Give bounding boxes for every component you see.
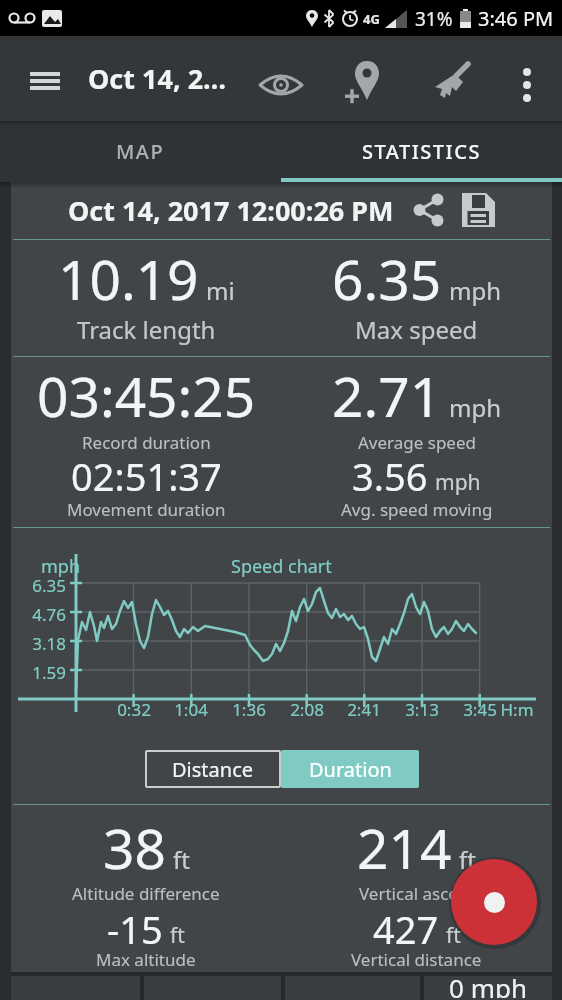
button[interactable]: [451, 859, 537, 945]
button[interactable]: [252, 54, 310, 112]
staticText: mph: [449, 274, 502, 307]
button[interactable]: [500, 49, 554, 111]
staticText: Duration: [309, 756, 392, 783]
staticText: 1:04: [163, 698, 219, 721]
staticText: 02:51:37: [71, 450, 222, 502]
staticText: 4.76: [16, 603, 66, 626]
button[interactable]: Distance: [145, 750, 281, 788]
staticText: Record duration: [82, 431, 211, 454]
staticText: 10.19: [58, 241, 199, 316]
button[interactable]: Duration: [281, 750, 419, 788]
staticText: 3.18: [16, 632, 66, 655]
staticText: Max speed: [355, 313, 478, 346]
staticText: ft: [459, 843, 476, 876]
staticText: Max altitude: [96, 948, 196, 971]
staticText: -15: [107, 903, 163, 955]
staticText: 3:45: [452, 698, 508, 721]
staticText: 03:45:25: [37, 358, 256, 433]
staticText: ft: [170, 921, 185, 950]
button[interactable]: MAP: [0, 121, 281, 182]
staticText: 427: [373, 903, 439, 955]
staticText: Distance: [172, 756, 254, 783]
staticText: 0 mph: [449, 970, 528, 998]
staticText: Average speed: [358, 431, 476, 454]
staticText: 2:41: [336, 698, 392, 721]
staticText: 3:13: [394, 698, 450, 721]
staticText: Altitude difference: [72, 882, 220, 905]
staticText: H:m: [489, 698, 545, 721]
staticText: 6.35: [332, 241, 442, 316]
staticText: 214: [357, 810, 452, 885]
staticText: ft: [446, 921, 461, 950]
button[interactable]: [423, 55, 481, 117]
staticText: STATISTICS: [362, 138, 481, 165]
staticText: 6.35: [16, 574, 66, 597]
staticText: 1:36: [221, 698, 277, 721]
staticText: MAP: [116, 138, 165, 165]
staticText: 2:08: [279, 698, 335, 721]
staticText: mph: [41, 554, 81, 579]
staticText: Oct 14, 2017 12:00:26 PM: [68, 192, 394, 229]
staticText: Movement duration: [67, 498, 226, 521]
staticText: Oct 14, 2…: [88, 60, 227, 97]
staticText: mph: [435, 468, 481, 497]
staticText: Vertical ascent: [359, 882, 475, 905]
button[interactable]: [337, 55, 395, 117]
staticText: Vertical distance: [351, 948, 482, 971]
button[interactable]: STATISTICS: [281, 121, 562, 182]
staticText: Speed chart: [231, 554, 332, 579]
button[interactable]: [413, 194, 444, 226]
staticText: 2.71: [332, 358, 442, 433]
staticText: mi: [206, 274, 235, 307]
button[interactable]: [16, 56, 74, 100]
staticText: 0:32: [106, 698, 162, 721]
staticText: 1.59: [16, 661, 66, 684]
staticText: Track length: [77, 313, 216, 346]
staticText: mph: [449, 391, 502, 424]
staticText: Avg. speed moving: [341, 498, 493, 521]
staticText: 38: [103, 810, 166, 885]
staticText: 3:46 PM: [478, 5, 554, 32]
button[interactable]: [460, 192, 496, 229]
staticText: 31%: [415, 6, 453, 32]
staticText: ft: [173, 843, 190, 876]
staticText: 3.56: [352, 450, 428, 502]
staticText: 4G: [363, 10, 380, 28]
